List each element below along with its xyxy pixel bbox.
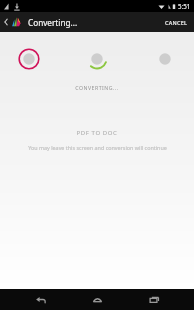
staticText: 5:51 (178, 2, 191, 10)
staticText: CANCEL (165, 19, 188, 26)
staticText: PDF TO DOC (76, 129, 118, 137)
staticText: Converting... (28, 17, 78, 28)
button[interactable]: Step 1: Upload (18, 48, 40, 70)
button[interactable]: Home (80, 289, 114, 310)
staticText: CONVERTING... (75, 84, 119, 91)
button[interactable]: Step 2: Converting (86, 48, 108, 70)
button[interactable]: Recent apps (137, 289, 171, 310)
button[interactable]: Step 3: Download (154, 48, 176, 70)
button[interactable]: Back (23, 289, 57, 310)
staticText: You may leave this screen and conversion… (28, 144, 167, 151)
button[interactable]: CANCEL (159, 12, 194, 32)
button[interactable]: Navigate up (0, 12, 24, 32)
